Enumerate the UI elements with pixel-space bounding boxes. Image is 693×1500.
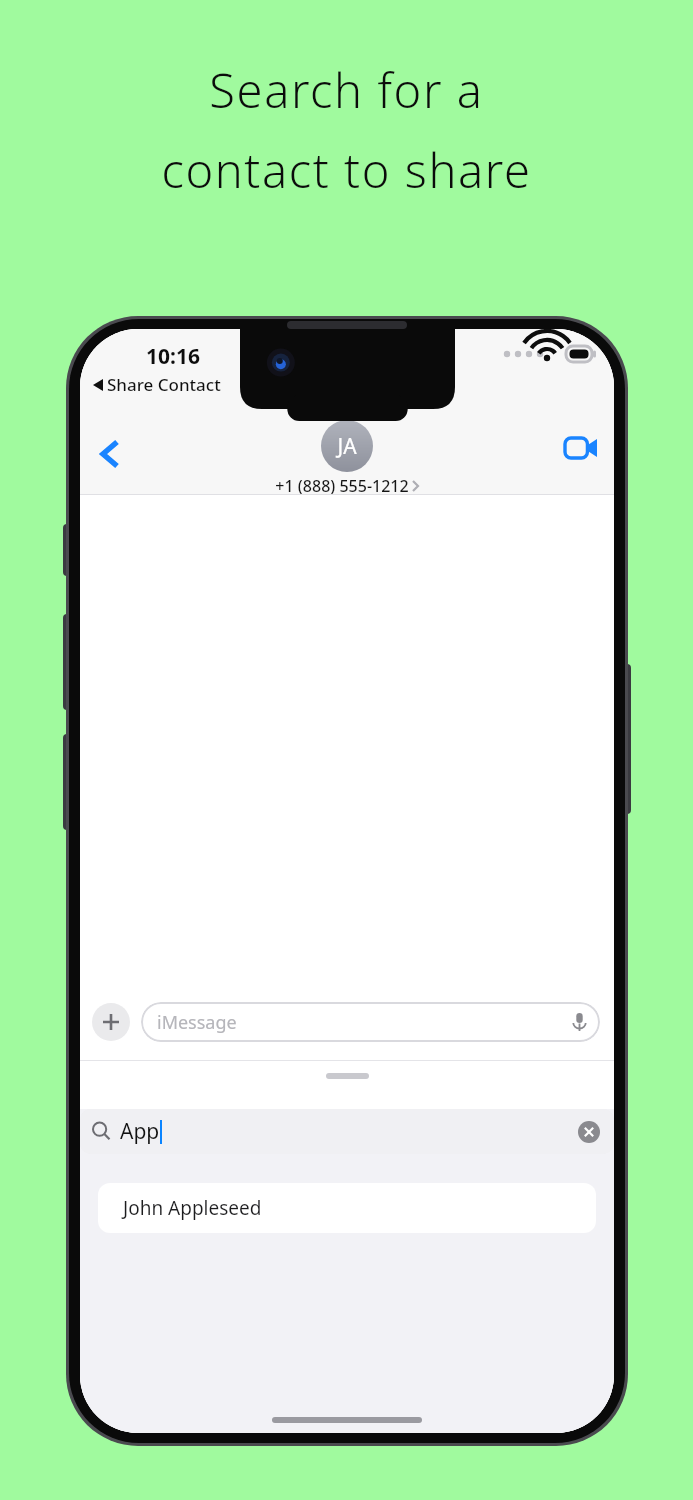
staticText: John Appleseed <box>123 1195 262 1221</box>
button[interactable]: FaceTime video call <box>556 423 606 473</box>
button[interactable]: Clear search <box>578 1121 600 1143</box>
staticText: iMessage <box>157 1010 237 1035</box>
staticText: App <box>120 1117 160 1146</box>
staticText: 10:16 <box>146 342 200 371</box>
button[interactable]: Back <box>86 431 132 477</box>
staticText: Search for a <box>209 58 484 122</box>
button[interactable]: iMessage <box>141 1002 600 1042</box>
staticText: +1 (888) 555-1212 <box>275 475 409 497</box>
button[interactable]: Add attachment <box>92 1003 130 1041</box>
staticText: Share Contact <box>107 373 221 396</box>
staticText: JA <box>337 432 357 461</box>
button[interactable]: JA <box>275 420 419 497</box>
button[interactable]: John Appleseed <box>98 1183 596 1233</box>
button[interactable]: App <box>80 1109 614 1154</box>
staticText: contact to share <box>161 138 532 202</box>
